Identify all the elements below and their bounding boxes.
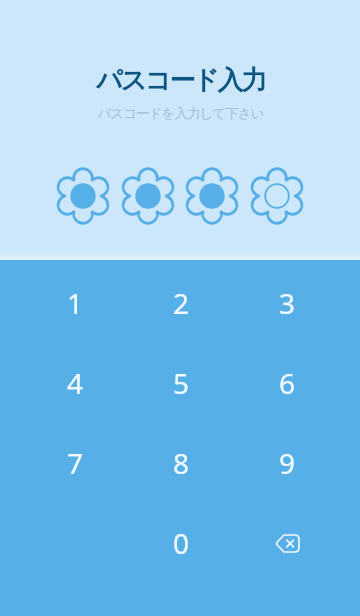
staticText: 2 xyxy=(173,284,190,322)
button[interactable]: 5 xyxy=(128,343,234,423)
staticText: 0 xyxy=(173,524,190,562)
button[interactable]: 1 xyxy=(22,263,128,343)
button[interactable]: Delete xyxy=(234,503,340,583)
staticText: 1 xyxy=(67,284,84,322)
button[interactable]: 2 xyxy=(128,263,234,343)
button[interactable]: 3 xyxy=(234,263,340,343)
staticText: 5 xyxy=(173,364,190,402)
staticText: パスコードを入力して下さい xyxy=(97,105,264,122)
staticText: 7 xyxy=(67,444,84,482)
button[interactable]: 9 xyxy=(234,423,340,503)
button[interactable]: 8 xyxy=(128,423,234,503)
button[interactable]: 0 xyxy=(128,503,234,583)
staticText: 3 xyxy=(279,284,296,322)
staticText: 4 xyxy=(67,364,84,402)
staticText: 8 xyxy=(173,444,190,482)
staticText: 9 xyxy=(279,444,296,482)
staticText: パスコード入力 xyxy=(96,64,265,97)
button[interactable]: 7 xyxy=(22,423,128,503)
staticText: 6 xyxy=(279,364,296,402)
button[interactable]: 4 xyxy=(22,343,128,423)
button[interactable]: 6 xyxy=(234,343,340,423)
